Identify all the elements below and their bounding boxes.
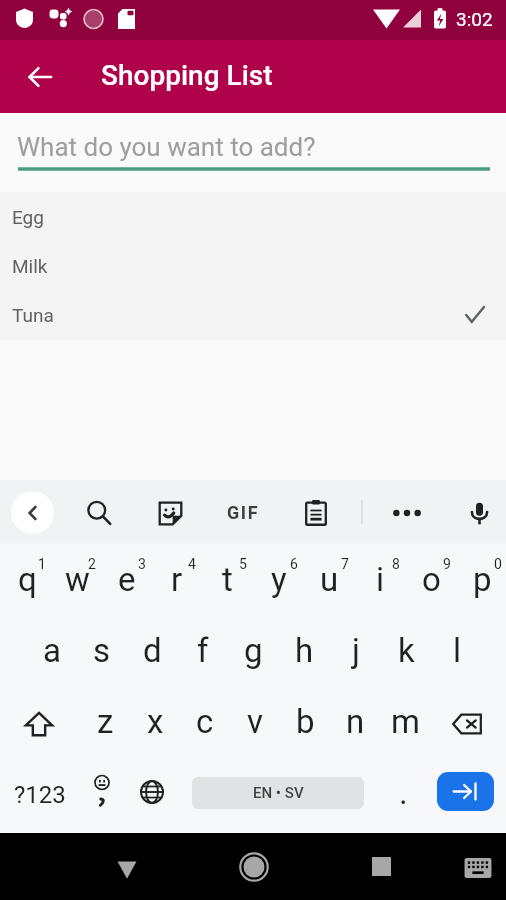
- staticText: h: [295, 631, 314, 670]
- button[interactable]: .: [381, 759, 425, 833]
- staticText: 6: [290, 556, 298, 572]
- staticText: o: [422, 560, 441, 599]
- button[interactable]: Backspace: [428, 688, 506, 759]
- staticText: 1: [38, 556, 46, 572]
- staticText: .: [399, 773, 408, 812]
- staticText: b: [296, 702, 315, 741]
- staticText: v: [247, 702, 263, 741]
- button[interactable]: f: [175, 617, 226, 688]
- staticText: 9: [443, 556, 451, 572]
- button[interactable]: More options: [385, 491, 429, 535]
- button[interactable]: Recent apps: [355, 833, 407, 900]
- staticText: t: [222, 560, 233, 599]
- staticText: e: [118, 560, 136, 599]
- button[interactable]: Switch keyboard: [453, 833, 503, 900]
- staticText: d: [143, 631, 162, 670]
- staticText: z: [97, 702, 114, 741]
- staticText: a: [43, 631, 61, 670]
- button[interactable]: Navigate up: [12, 40, 68, 113]
- staticText: r: [171, 560, 183, 599]
- staticText: 4: [188, 556, 196, 572]
- staticText: x: [147, 702, 164, 741]
- staticText: Shopping List: [101, 59, 273, 92]
- staticText: 3: [138, 556, 146, 572]
- button[interactable]: Voice input: [457, 491, 501, 535]
- staticText: EN • SV: [253, 784, 304, 802]
- staticText: 5: [239, 556, 247, 572]
- staticText: 2: [88, 556, 96, 572]
- staticText: GIF: [227, 502, 260, 523]
- staticText: s: [93, 631, 111, 670]
- staticText: l: [453, 631, 462, 670]
- button[interactable]: Expand toolbar: [11, 491, 54, 534]
- button[interactable]: Search: [77, 491, 121, 535]
- button[interactable]: t: [200, 546, 251, 617]
- button[interactable]: Stickers: [148, 491, 192, 535]
- staticText: ?123: [14, 781, 66, 809]
- button[interactable]: n: [328, 688, 378, 759]
- button[interactable]: e: [100, 546, 150, 617]
- staticText: w: [65, 560, 90, 599]
- button[interactable]: Egg: [0, 192, 506, 241]
- button[interactable]: Change language: [130, 759, 174, 833]
- staticText: Milk: [12, 255, 48, 277]
- button[interactable]: j: [328, 617, 379, 688]
- staticText: What do you want to add?: [17, 132, 316, 162]
- button[interactable]: Hide keyboard: [101, 833, 153, 900]
- staticText: k: [398, 631, 415, 670]
- staticText: i: [376, 560, 385, 599]
- button[interactable]: Clipboard: [294, 491, 338, 535]
- button[interactable]: p: [455, 546, 506, 617]
- button[interactable]: b: [278, 688, 328, 759]
- button[interactable]: v: [228, 688, 278, 759]
- button[interactable]: y: [251, 546, 302, 617]
- button[interactable]: g: [226, 617, 277, 688]
- button[interactable]: q: [0, 546, 50, 617]
- button[interactable]: w: [50, 546, 100, 617]
- button[interactable]: m: [378, 688, 428, 759]
- button[interactable]: GIF: [221, 491, 265, 534]
- staticText: q: [18, 560, 37, 599]
- button[interactable]: Enter: [437, 772, 494, 811]
- button[interactable]: ?123: [8, 759, 72, 833]
- button[interactable]: EN • SV: [192, 777, 364, 809]
- button[interactable]: a: [25, 617, 75, 688]
- staticText: Tuna: [12, 304, 54, 326]
- staticText: Egg: [12, 206, 44, 228]
- button[interactable]: k: [379, 617, 430, 688]
- button[interactable]: x: [128, 688, 178, 759]
- button[interactable]: Emoji: [80, 759, 124, 833]
- button[interactable]: Tuna: [0, 290, 506, 339]
- button[interactable]: r: [150, 546, 200, 617]
- button[interactable]: z: [78, 688, 128, 759]
- button[interactable]: Home: [228, 833, 280, 900]
- staticText: 7: [341, 556, 349, 572]
- staticText: 0: [494, 556, 502, 572]
- button[interactable]: u: [302, 546, 353, 617]
- button[interactable]: Milk: [0, 241, 506, 290]
- staticText: m: [391, 702, 420, 741]
- staticText: c: [196, 702, 214, 741]
- button[interactable]: h: [277, 617, 328, 688]
- button[interactable]: l: [430, 617, 481, 688]
- staticText: 8: [392, 556, 400, 572]
- staticText: u: [320, 560, 339, 599]
- button[interactable]: o: [404, 546, 455, 617]
- staticText: n: [346, 702, 365, 741]
- button[interactable]: i: [353, 546, 404, 617]
- button[interactable]: d: [125, 617, 175, 688]
- staticText: p: [473, 560, 492, 599]
- staticText: j: [352, 631, 360, 670]
- button[interactable]: s: [75, 617, 125, 688]
- staticText: f: [197, 631, 209, 670]
- staticText: 3:02: [456, 8, 493, 30]
- staticText: g: [244, 631, 263, 670]
- staticText: y: [271, 560, 287, 599]
- button[interactable]: Shift: [0, 688, 78, 759]
- button[interactable]: c: [178, 688, 228, 759]
